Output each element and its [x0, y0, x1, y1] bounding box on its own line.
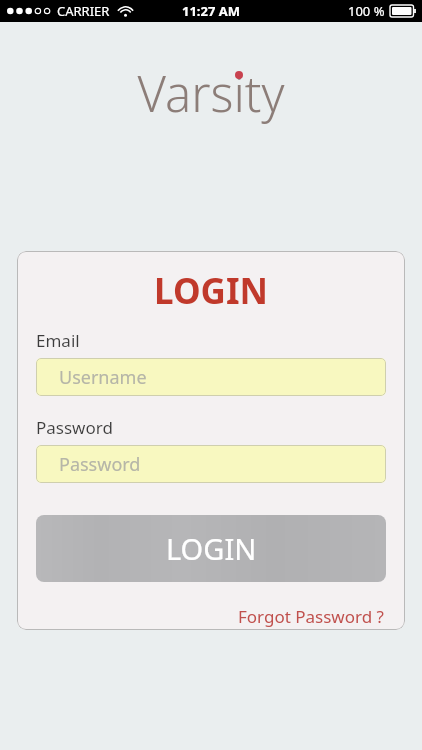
button[interactable]: Forgot Password ? — [236, 603, 386, 630]
staticText: Password — [36, 416, 113, 439]
button[interactable]: Username — [36, 358, 386, 396]
button[interactable]: Password — [36, 445, 386, 483]
staticText: Username — [59, 365, 147, 390]
staticText: Password — [59, 452, 141, 477]
staticText: Email — [36, 329, 80, 352]
staticText: LOGIN — [166, 529, 257, 568]
staticText: 11:27 AM — [182, 2, 241, 20]
staticText: Varsity — [137, 60, 285, 127]
staticText: CARRIER — [57, 2, 110, 20]
staticText: Forgot Password ? — [238, 605, 384, 628]
staticText: LOGIN — [17, 267, 405, 315]
button[interactable]: LOGIN — [36, 515, 386, 582]
staticText: 100 % — [348, 2, 385, 20]
